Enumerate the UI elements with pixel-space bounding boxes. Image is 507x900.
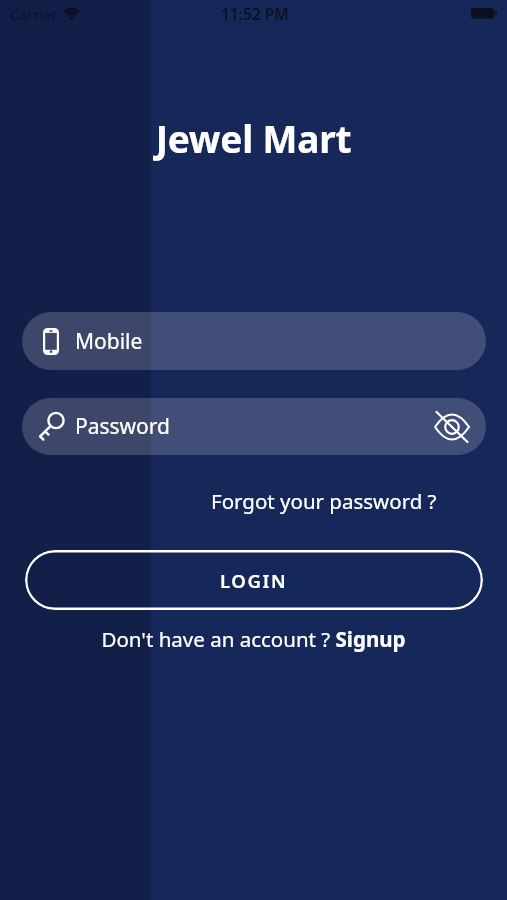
- staticText: Mobile: [75, 327, 143, 356]
- staticText: 11:52 PM: [221, 3, 289, 24]
- button[interactable]: Forgot your password ?: [211, 487, 437, 515]
- staticText: Password: [75, 412, 170, 441]
- button[interactable]: Password: [22, 398, 486, 455]
- button[interactable]: Don't have an account ? Signup: [0, 625, 507, 653]
- staticText: LOGIN: [220, 568, 288, 593]
- staticText: Carrier: [10, 4, 58, 24]
- button[interactable]: LOGIN: [25, 550, 483, 610]
- staticText: Jewel Mart: [0, 113, 507, 163]
- button[interactable]: Mobile: [22, 312, 486, 370]
